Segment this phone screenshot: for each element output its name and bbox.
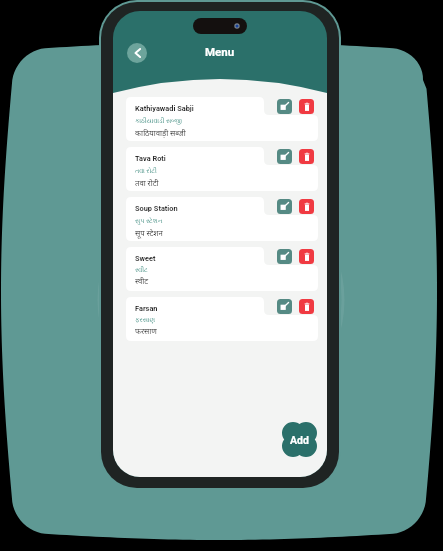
staticText: સ્વીટ [135, 267, 148, 273]
staticText: तवा रोटी [135, 178, 159, 188]
button[interactable]: Kathiyawadi Sabji [126, 97, 318, 141]
button[interactable]: Delete [299, 99, 314, 114]
button[interactable]: Edit [277, 249, 292, 264]
staticText: સુપ સ્ટેશન [135, 217, 163, 225]
button[interactable]: Delete [299, 149, 314, 164]
button[interactable]: Delete [299, 299, 314, 314]
staticText: काठियावाड़ी सब्जी [135, 128, 186, 138]
button[interactable]: Add [282, 422, 317, 457]
staticText: Farsan [135, 304, 158, 313]
staticText: स्वीट [135, 276, 149, 286]
button[interactable]: Edit [277, 99, 292, 114]
staticText: Kathiyawadi Sabji [135, 104, 194, 113]
staticText: Menu [205, 45, 235, 58]
staticText: सूप स्टेशन [135, 228, 163, 238]
staticText: Soup Station [135, 204, 178, 213]
button[interactable]: Tava Roti [126, 147, 318, 191]
button[interactable]: Edit [277, 199, 292, 214]
staticText: કાઠીયાવાડી સબ્જી [135, 117, 182, 125]
button[interactable]: Delete [299, 249, 314, 264]
button[interactable]: Edit [277, 299, 292, 314]
button[interactable]: Soup Station [126, 197, 318, 241]
staticText: Sweet [135, 254, 156, 263]
staticText: Add [290, 434, 309, 446]
staticText: ફરસાણ [135, 317, 156, 323]
button[interactable]: Delete [299, 199, 314, 214]
staticText: फरसाण [135, 326, 157, 336]
button[interactable]: Back [127, 43, 147, 63]
staticText: તવા રોટી [135, 167, 157, 175]
button[interactable]: Sweet [126, 247, 318, 291]
button[interactable]: Farsan [126, 297, 318, 341]
staticText: Tava Roti [135, 154, 166, 163]
button[interactable]: Edit [277, 149, 292, 164]
